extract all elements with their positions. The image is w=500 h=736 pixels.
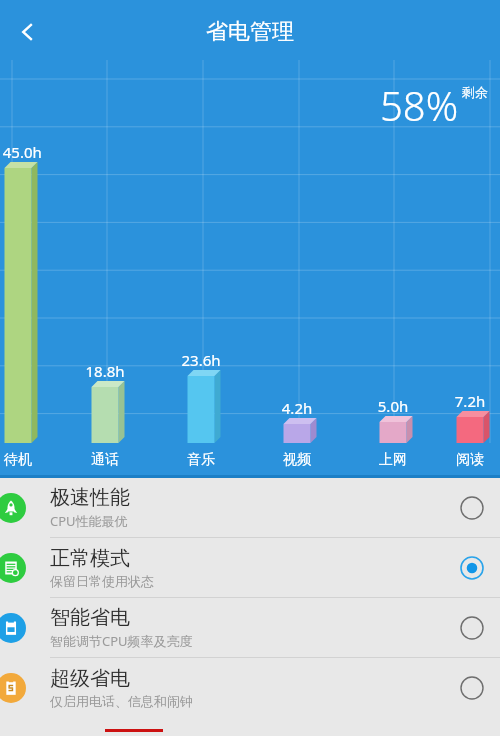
staticText: 5.0h: [357, 396, 429, 416]
button[interactable]: Back: [0, 4, 56, 60]
button[interactable]: 正常模式: [0, 538, 500, 597]
staticText: 音乐: [165, 451, 237, 469]
staticText: CPU性能最优: [50, 512, 128, 530]
staticText: 保留日常使用状态: [50, 573, 154, 589]
staticText: 7.2h: [434, 391, 500, 411]
staticText: 18.8h: [69, 361, 141, 381]
staticText: 省电管理: [206, 18, 294, 46]
staticText: 超级省电: [50, 666, 130, 691]
staticText: 145.0h: [0, 142, 54, 162]
staticText: 23.6h: [165, 350, 237, 370]
button[interactable]: 智能省电: [0, 598, 500, 657]
staticText: 视频: [261, 451, 333, 469]
staticText: 正常模式: [50, 546, 130, 571]
staticText: 上网: [357, 451, 429, 469]
button[interactable]: 极速性能: [0, 478, 500, 537]
staticText: 阅读: [434, 451, 500, 469]
staticText: 4.2h: [261, 398, 333, 418]
staticText: 极速性能: [50, 485, 130, 510]
staticText: 仅启用电话、信息和闹钟: [50, 693, 193, 709]
staticText: 58%: [380, 78, 459, 132]
staticText: 待机: [0, 451, 54, 469]
staticText: 智能省电: [50, 605, 130, 630]
staticText: 通话: [69, 451, 141, 469]
button[interactable]: 超级省电: [0, 658, 500, 717]
staticText: 剩余: [462, 84, 488, 100]
staticText: 智能调节CPU频率及亮度: [50, 632, 193, 650]
